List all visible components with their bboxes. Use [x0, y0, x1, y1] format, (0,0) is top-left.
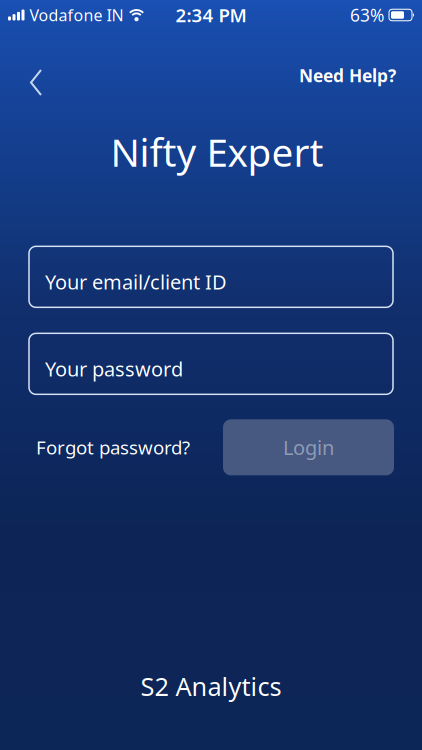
button[interactable]: Need Help?	[299, 64, 422, 87]
button[interactable]: Your email/client ID	[29, 246, 393, 307]
staticText: Your email/client ID	[45, 269, 227, 295]
button[interactable]: Login	[223, 419, 394, 475]
staticText: Need Help?	[299, 64, 396, 87]
staticText: Nifty Expert	[110, 126, 323, 177]
staticText: Login	[283, 434, 334, 461]
staticText: Forgot password?	[36, 435, 190, 460]
staticText: 63%	[350, 3, 384, 26]
button[interactable]: Forgot password?	[36, 435, 190, 460]
staticText: S2 Analytics	[140, 669, 281, 703]
staticText: 2:34 PM	[175, 3, 246, 27]
staticText: Your password	[45, 356, 183, 382]
button[interactable]: Your password	[29, 333, 393, 394]
button[interactable]	[0, 62, 42, 89]
staticText: Vodafone IN	[29, 4, 123, 26]
